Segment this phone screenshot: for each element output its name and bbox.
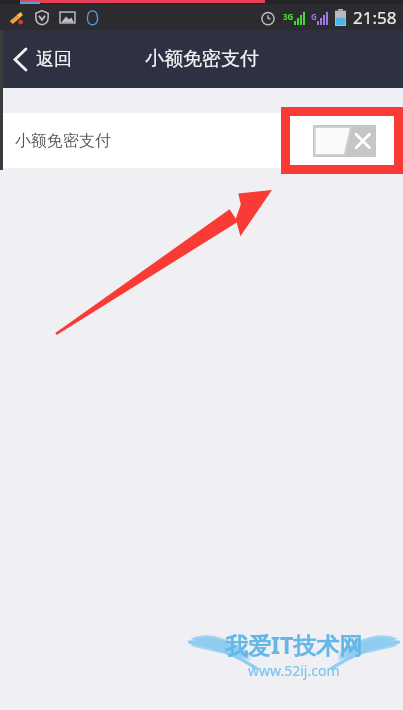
staticText: 小额免密支付 bbox=[145, 47, 259, 71]
staticText: 3G bbox=[283, 11, 294, 22]
staticText: www.52ij.com bbox=[248, 661, 340, 680]
button[interactable]: 小额免密支付开关，已关闭 bbox=[313, 125, 376, 157]
button[interactable]: 返回 bbox=[0, 30, 86, 88]
staticText: 我爱IT技术网 bbox=[225, 629, 363, 660]
button[interactable]: 小额免密支付 bbox=[0, 113, 403, 168]
staticText: 返回 bbox=[36, 48, 72, 71]
staticText: 小额免密支付 bbox=[15, 131, 111, 151]
staticText: 21:58 bbox=[353, 6, 397, 29]
staticText: G bbox=[311, 11, 317, 22]
